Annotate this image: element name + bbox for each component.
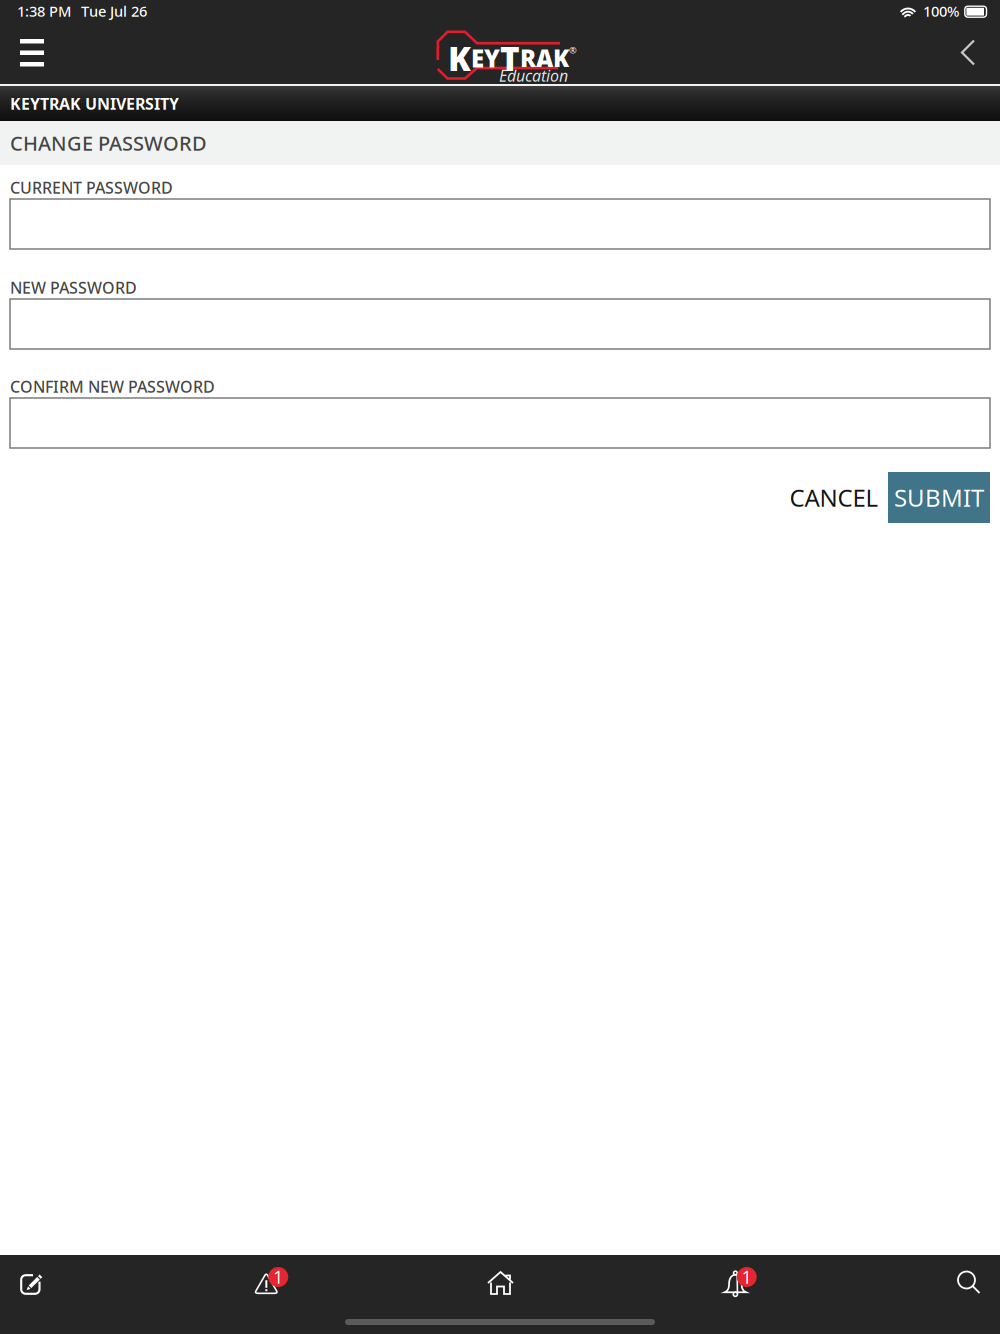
staticText: T — [500, 36, 520, 80]
staticText: EY — [471, 42, 500, 74]
staticText: CANCEL — [789, 482, 878, 513]
staticText: ® — [569, 44, 577, 56]
staticText: RAK — [520, 42, 569, 74]
staticText: KEYTRAK UNIVERSITY — [10, 93, 179, 114]
staticText: 1 — [742, 1265, 752, 1288]
staticText: CONFIRM NEW PASSWORD — [10, 376, 215, 397]
staticText: 1 — [273, 1265, 283, 1288]
button[interactable]: Search — [941, 1261, 997, 1305]
staticText: Education — [499, 65, 568, 86]
staticText: 100% — [923, 1, 959, 21]
button[interactable]: Back — [941, 30, 1000, 79]
staticText: Tue Jul 26 — [81, 1, 147, 21]
staticText: NEW PASSWORD — [10, 277, 137, 298]
button[interactable]: Home — [472, 1261, 528, 1305]
staticText: CURRENT PASSWORD — [10, 177, 173, 198]
button[interactable]: Menu — [0, 29, 64, 81]
staticText: K — [448, 36, 471, 80]
button[interactable]: Notifications — [707, 1261, 763, 1305]
staticText: SUBMIT — [894, 482, 984, 513]
staticText: 1:38 PM — [17, 1, 71, 21]
staticText: CHANGE PASSWORD — [10, 130, 207, 156]
button[interactable]: SUBMIT — [888, 472, 990, 523]
button[interactable]: CANCEL — [780, 472, 888, 523]
button[interactable]: Alerts — [238, 1261, 294, 1305]
button[interactable]: Compose — [4, 1261, 60, 1305]
